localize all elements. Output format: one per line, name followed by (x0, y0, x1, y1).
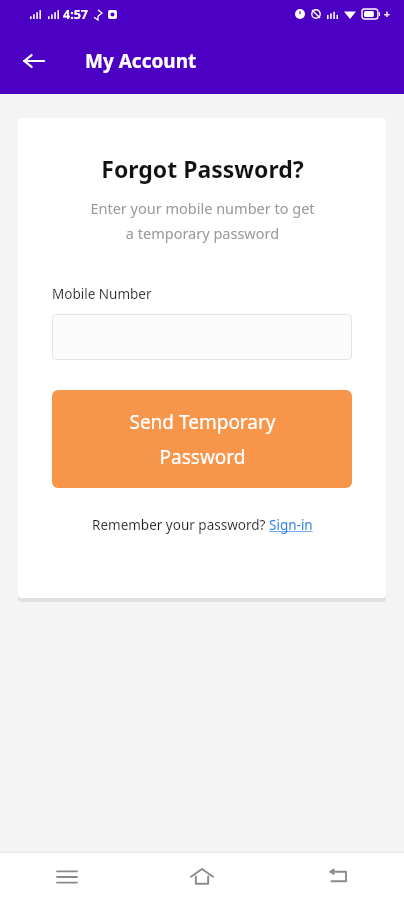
button[interactable]: Recent apps (0, 853, 134, 900)
button[interactable]: Back (269, 853, 404, 900)
button[interactable] (52, 314, 352, 360)
button[interactable]: Send Temporary Password (52, 390, 352, 488)
button[interactable]: Home (134, 853, 269, 900)
staticText: 4:57 (63, 6, 88, 23)
staticText: Remember your password? (92, 516, 269, 534)
button[interactable]: Back (12, 39, 56, 83)
staticText: Sign-in (269, 516, 313, 534)
staticText: Send Temporary Password (129, 409, 276, 469)
staticText: + (384, 7, 390, 21)
staticText: Forgot Password? (101, 153, 304, 184)
staticText: Enter your mobile number to get a tempor… (90, 198, 315, 243)
staticText: My Account (85, 48, 197, 74)
staticText: Mobile Number (52, 285, 152, 303)
button[interactable]: Sign-in (269, 516, 313, 534)
